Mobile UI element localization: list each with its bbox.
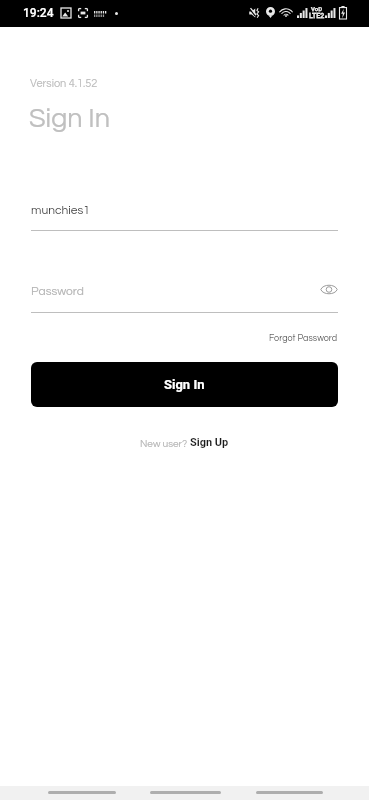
- button[interactable]: Back: [48, 791, 116, 794]
- staticText: Version 4.1.52: [30, 78, 98, 89]
- staticText: 19:24: [23, 6, 54, 20]
- staticText: New user?: [140, 439, 190, 449]
- button[interactable]: Recents: [256, 791, 323, 794]
- staticText: Sign In: [29, 105, 110, 133]
- staticText: Sign In: [164, 377, 205, 392]
- button[interactable]: Sign In: [31, 362, 338, 407]
- button[interactable]: Home: [150, 791, 221, 794]
- staticText: LTE2: [309, 12, 325, 20]
- staticText: Password: [31, 285, 84, 297]
- staticText: VoD: [311, 5, 323, 12]
- button[interactable]: Forgot Password: [269, 334, 338, 343]
- button[interactable]: Show password: [318, 278, 340, 300]
- staticText: munchies1: [31, 204, 90, 216]
- button[interactable]: Sign Up: [190, 436, 229, 449]
